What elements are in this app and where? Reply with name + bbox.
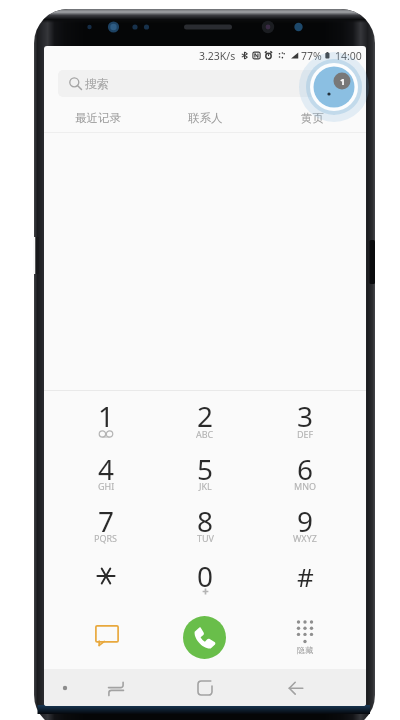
staticText: 联系人 [188,111,223,125]
staticText: DEF [297,428,314,440]
staticText: 9 [297,502,314,540]
button[interactable] [159,495,251,547]
staticText: 5 [197,450,214,488]
button[interactable] [159,443,251,495]
staticText: GHI [98,480,115,492]
button[interactable] [60,390,152,442]
staticText: 8 [197,502,214,540]
staticText: ABC [196,428,214,440]
button[interactable]: 联系人 [152,104,259,131]
staticText: 1 [340,75,346,87]
button[interactable] [60,495,152,547]
staticText: 0 [197,557,214,595]
button[interactable]: 最近记录 [44,104,152,131]
button[interactable] [259,390,351,442]
staticText: PQRS [94,532,118,544]
staticText: JKL [199,480,212,492]
staticText: 搜索 [85,76,109,91]
button[interactable] [60,550,152,602]
staticText: TUV [197,532,214,544]
button[interactable]: Recents [92,669,140,706]
staticText: 77% [301,49,322,63]
button[interactable]: 搜索 [58,70,352,97]
staticText: MNO [294,480,317,492]
staticText: 7 [98,502,115,540]
staticText: 隐藏 [281,645,329,655]
button[interactable] [60,443,152,495]
button[interactable]: Menu [44,669,89,706]
staticText: 黄页 [301,111,324,125]
button[interactable]: Call [183,616,226,659]
staticText: # [297,559,314,594]
staticText: 3 [297,397,314,435]
button[interactable]: Hide keypad [281,617,329,661]
button[interactable]: Home [181,669,229,706]
staticText: 1 [98,397,115,435]
staticText: WXYZ [293,532,317,544]
staticText: 最近记录 [75,111,121,125]
button[interactable] [259,495,351,547]
button[interactable] [259,550,351,602]
button[interactable] [259,443,351,495]
button[interactable] [159,550,251,602]
button[interactable] [159,390,251,442]
button[interactable]: Send message [83,611,131,659]
button[interactable]: Back [272,669,320,706]
staticText: 4 [98,450,115,488]
staticText: 2 [197,397,214,435]
button[interactable]: 黄页 [259,104,366,131]
staticText: 6 [297,450,314,488]
staticText: 3.23K/s [199,49,236,63]
staticText: 14:00 [335,49,362,63]
